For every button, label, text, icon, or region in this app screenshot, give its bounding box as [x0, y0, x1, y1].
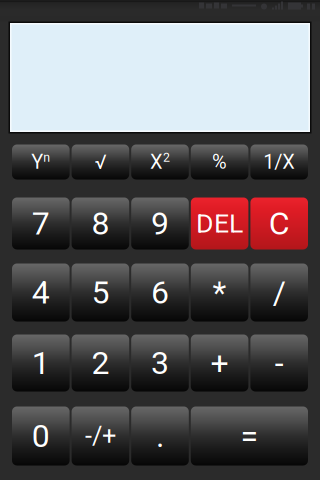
- button[interactable]: 2: [72, 334, 129, 391]
- button[interactable]: 5: [72, 263, 129, 321]
- button[interactable]: 1/X: [250, 144, 308, 179]
- button[interactable]: 8: [72, 197, 129, 249]
- staticText: 1/X: [263, 150, 295, 174]
- button[interactable]: -/+: [72, 406, 129, 465]
- staticText: -: [275, 344, 284, 382]
- staticText: C: [269, 205, 290, 242]
- button[interactable]: .: [131, 406, 189, 465]
- staticText: 2: [91, 344, 109, 382]
- button[interactable]: /: [250, 263, 308, 321]
- button[interactable]: 0: [12, 406, 70, 465]
- staticText: 4: [32, 274, 50, 311]
- staticText: 0: [32, 417, 50, 455]
- button[interactable]: √: [72, 144, 129, 179]
- staticText: 3: [151, 344, 169, 382]
- staticText: -/+: [85, 421, 116, 451]
- staticText: 5: [91, 274, 109, 311]
- button[interactable]: X: [131, 144, 189, 179]
- staticText: .: [156, 417, 164, 455]
- staticText: %: [212, 150, 227, 174]
- button[interactable]: =: [191, 406, 308, 465]
- staticText: Y: [31, 150, 43, 174]
- staticText: 9: [151, 205, 169, 242]
- staticText: 1: [32, 344, 50, 382]
- staticText: *: [213, 274, 227, 311]
- staticText: DEL: [196, 208, 243, 239]
- staticText: 6: [151, 274, 169, 311]
- button[interactable]: 1: [12, 334, 70, 391]
- button[interactable]: +: [191, 334, 248, 391]
- button[interactable]: C: [250, 197, 308, 249]
- button[interactable]: -: [250, 334, 308, 391]
- staticText: 7: [32, 205, 50, 242]
- button[interactable]: *: [191, 263, 248, 321]
- button[interactable]: 7: [12, 197, 70, 249]
- button[interactable]: %: [191, 144, 248, 179]
- staticText: n: [43, 150, 50, 165]
- button[interactable]: 9: [131, 197, 189, 249]
- button[interactable]: 3: [131, 334, 189, 391]
- staticText: √: [94, 150, 106, 174]
- staticText: 2: [163, 150, 170, 165]
- button[interactable]: DEL: [191, 197, 248, 249]
- staticText: /: [273, 274, 286, 311]
- button[interactable]: 4: [12, 263, 70, 321]
- staticText: =: [240, 417, 258, 455]
- button[interactable]: 6: [131, 263, 189, 321]
- button[interactable]: Y: [12, 144, 70, 179]
- staticText: +: [211, 344, 229, 382]
- staticText: X: [150, 150, 163, 174]
- staticText: 8: [91, 205, 109, 242]
